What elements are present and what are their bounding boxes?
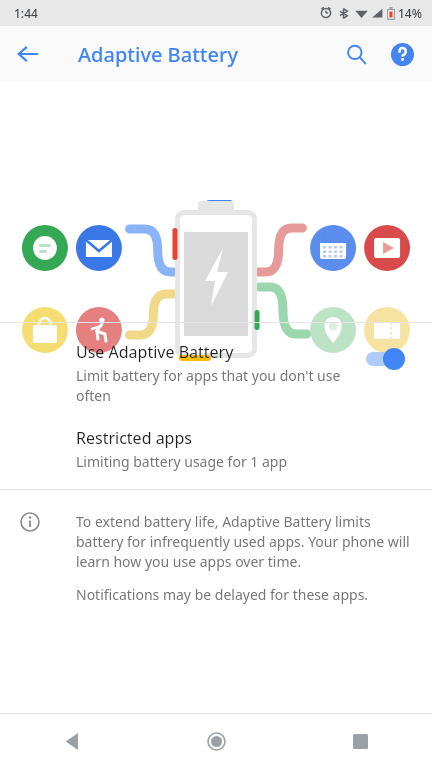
button[interactable]: Back (0, 714, 144, 768)
button[interactable]: Back (8, 34, 48, 74)
staticText: Restricted apps (76, 427, 192, 449)
button[interactable]: Help (382, 34, 422, 74)
button[interactable]: Use Adaptive Battery toggle (364, 341, 416, 377)
button[interactable]: Home (144, 714, 288, 768)
button[interactable]: Search (336, 34, 376, 74)
staticText: Limiting battery usage for 1 app (76, 452, 288, 471)
staticText: Use Adaptive Battery (76, 341, 234, 363)
button[interactable]: Recent apps (288, 714, 432, 768)
button[interactable]: Restricted apps (0, 427, 432, 471)
staticText: Adaptive Battery (78, 41, 238, 68)
button[interactable]: Use Adaptive Battery (0, 341, 432, 405)
staticText: Notifications may be delayed for these a… (76, 585, 369, 604)
staticText: Limit battery for apps that you don't us… (76, 366, 341, 405)
staticText: 1:44 (14, 5, 38, 21)
staticText: 14% (398, 5, 422, 21)
staticText: To extend battery life, Adaptive Battery… (76, 512, 410, 571)
